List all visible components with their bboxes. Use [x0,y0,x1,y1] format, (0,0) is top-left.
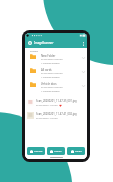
staticText: Gallery [54,150,62,153]
staticText: 01/02/2020 11:47 am [36,104,58,107]
staticText: All cards [41,68,52,72]
staticText: 01/02/2020 10:00 am [41,72,63,75]
staticText: Folders [30,49,39,52]
staticText: Scan_20200201_11-47-41_002.jpg [36,112,77,116]
staticText: ImageScanner [34,41,54,45]
staticText: Camera [34,150,43,153]
button[interactable]: New Folder [25,52,87,66]
staticText: Vehicle docs [41,82,57,86]
staticText: 1 scanned images [41,76,60,79]
button[interactable]: Vehicle docs [25,80,87,94]
button[interactable]: Scan_20200201_11-47-35_001.jpg [25,96,87,109]
staticText: 01/02/2020 10:00 am [41,58,63,61]
button[interactable]: More options [81,39,85,48]
button[interactable]: Gallery [47,147,65,155]
button[interactable]: Folder [67,147,85,155]
staticText: New Folder [41,54,56,58]
staticText: Folder [75,150,82,153]
staticText: 01/02/2020 11:47 am [36,117,58,120]
staticText: 1 scanned images [41,62,60,65]
staticText: 1 scanned images [41,90,60,93]
button[interactable]: All cards [25,66,87,80]
button[interactable]: Camera [27,147,45,155]
staticText: 01/02/2020 10:00 am [41,86,63,89]
button[interactable]: Scan_20200201_11-47-41_002.jpg [25,109,87,122]
staticText: Scan_20200201_11-47-35_001.jpg [36,99,77,103]
